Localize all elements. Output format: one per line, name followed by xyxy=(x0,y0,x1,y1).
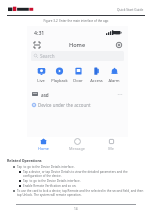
staticText: Message xyxy=(69,146,85,151)
staticText: Search xyxy=(40,53,55,59)
staticText: Access xyxy=(90,78,103,83)
staticText: asd xyxy=(41,92,49,98)
staticText: Figure 3-2 Enter the main interface of t… xyxy=(0,19,152,23)
staticText: Me xyxy=(108,146,114,151)
button[interactable]: Playback xyxy=(50,66,68,84)
staticText: 14 xyxy=(74,207,78,211)
staticText: Enable Remote Verification and so on. xyxy=(23,184,77,188)
staticText: Home xyxy=(69,41,86,49)
staticText: Quick Start Guide xyxy=(117,8,144,12)
button[interactable]: Message xyxy=(60,137,94,152)
staticText: Device under the account xyxy=(38,102,91,108)
staticText: Playback xyxy=(51,78,68,83)
button[interactable]: Me xyxy=(94,137,128,152)
button[interactable]: asd xyxy=(27,89,128,100)
button[interactable]: Search xyxy=(31,51,124,61)
staticText: To use the card to lock a device, tap Re… xyxy=(17,189,145,197)
staticText: Live xyxy=(37,78,45,83)
button[interactable]: Access xyxy=(87,66,105,84)
staticText: Tap to go to the Device Details interfac… xyxy=(17,165,75,169)
staticText: Home xyxy=(38,146,49,151)
staticText: Tap a device, or tap Device Details to v… xyxy=(23,170,145,178)
button[interactable]: Home xyxy=(27,137,60,152)
staticText: 4:31 xyxy=(34,29,45,36)
button[interactable]: Door xyxy=(69,66,87,84)
staticText: Alarm xyxy=(108,78,120,83)
button[interactable]: Add device xyxy=(114,40,123,49)
staticText: Door xyxy=(73,78,83,83)
button[interactable]: Alarm xyxy=(105,66,123,84)
staticText: Related Operations xyxy=(7,158,42,163)
staticText: Tap to go to the Device Details interfac… xyxy=(23,179,81,183)
button[interactable]: Scan QR code xyxy=(32,40,41,49)
button[interactable]: Live xyxy=(32,66,50,84)
